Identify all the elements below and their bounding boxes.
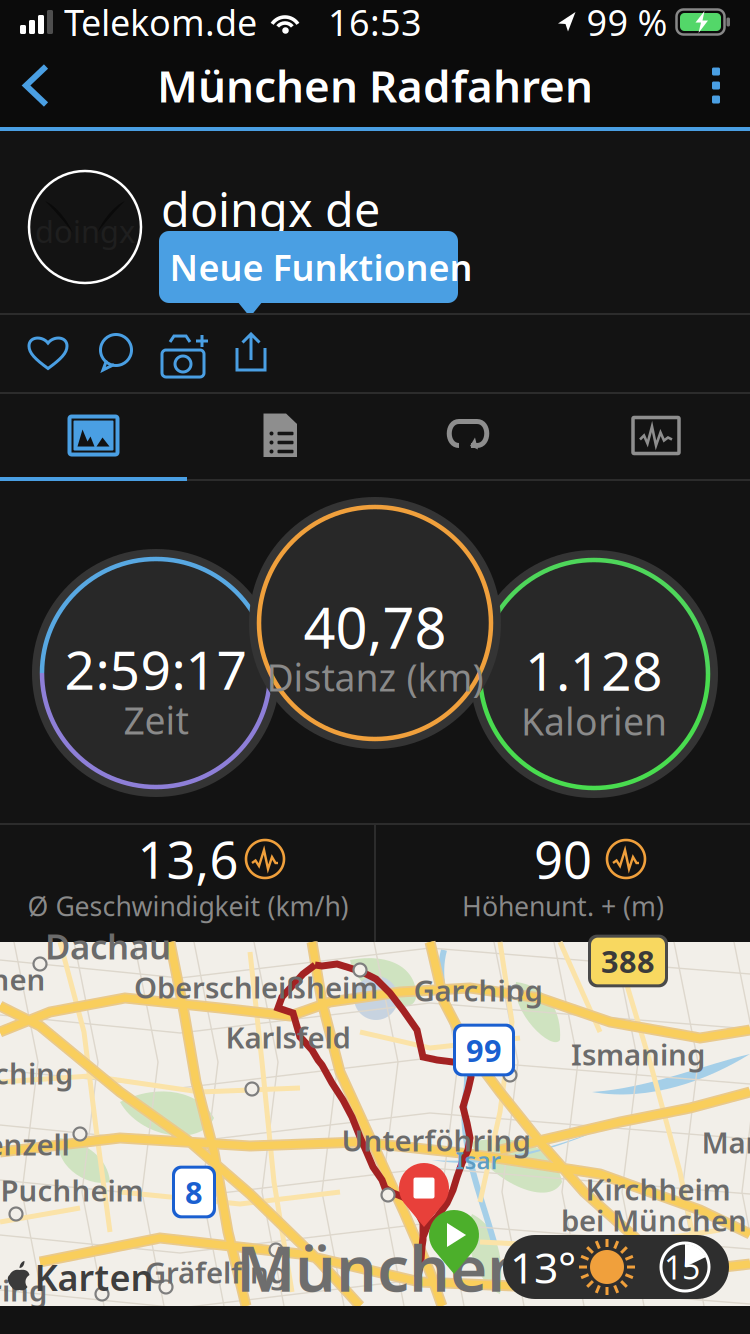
staticText: Radfahren	[161, 225, 370, 281]
staticText: enzell	[0, 1124, 69, 1163]
staticText: Ismaning	[571, 1034, 705, 1073]
staticText: Höhenunt. + (m)	[462, 888, 664, 924]
staticText: 8	[185, 1172, 203, 1212]
button[interactable]: More options	[682, 45, 750, 125]
staticText: Karlsfeld	[225, 1017, 350, 1056]
staticText: Distanz (km)	[266, 652, 483, 702]
staticText: 1.128	[525, 635, 663, 705]
staticText: Garching	[413, 970, 542, 1009]
staticText: 13°	[510, 1239, 576, 1295]
button[interactable]: Add photo	[148, 320, 222, 384]
button[interactable]: Share	[219, 318, 283, 386]
staticText: Mar	[701, 1122, 750, 1161]
staticText: Isar	[455, 1144, 500, 1176]
staticText: Telekom.de	[64, 0, 257, 46]
staticText: 99	[466, 1030, 502, 1070]
staticText: Ilching	[0, 1053, 73, 1092]
staticText: Unterföhring	[341, 1120, 530, 1159]
button[interactable]: Comment	[81, 319, 151, 385]
staticText: Dachau	[45, 923, 171, 969]
staticText: Karten	[34, 1253, 153, 1301]
staticText: Kirchheim	[585, 1169, 730, 1208]
staticText: 90	[534, 825, 592, 893]
staticText: Gräfelfing	[145, 1252, 287, 1291]
button[interactable]: Back	[0, 43, 78, 127]
staticText: ring	[0, 1270, 47, 1309]
button[interactable]: Graphs	[562, 395, 750, 475]
staticText: 388	[601, 941, 655, 981]
staticText: Puchheim	[0, 1170, 143, 1209]
staticText: Kalorien	[521, 696, 667, 746]
staticText: München Radfahren	[157, 56, 593, 115]
staticText: hen	[0, 959, 45, 998]
staticText: 16:53	[328, 0, 422, 46]
staticText: Ø Geschwindigkeit (km/h)	[27, 888, 348, 924]
staticText: Zeit	[123, 695, 188, 745]
staticText: Oberschleißheim	[134, 967, 378, 1006]
button[interactable]: Laps	[374, 395, 562, 475]
staticText: 13,6	[137, 825, 238, 893]
staticText: 99 %	[586, 0, 667, 46]
staticText: München	[236, 1224, 528, 1309]
staticText: bei München	[561, 1200, 747, 1239]
staticText: Neue Funktionen	[169, 243, 472, 291]
staticText: 15	[664, 1246, 700, 1288]
button[interactable]: Like	[13, 319, 83, 385]
staticText: 2:59:17	[64, 634, 247, 704]
staticText: doingx de	[161, 178, 380, 240]
button[interactable]: Map	[0, 395, 187, 475]
staticText: 40,78	[303, 590, 446, 664]
staticText: doingx	[35, 211, 135, 251]
button[interactable]: Details	[187, 395, 374, 475]
